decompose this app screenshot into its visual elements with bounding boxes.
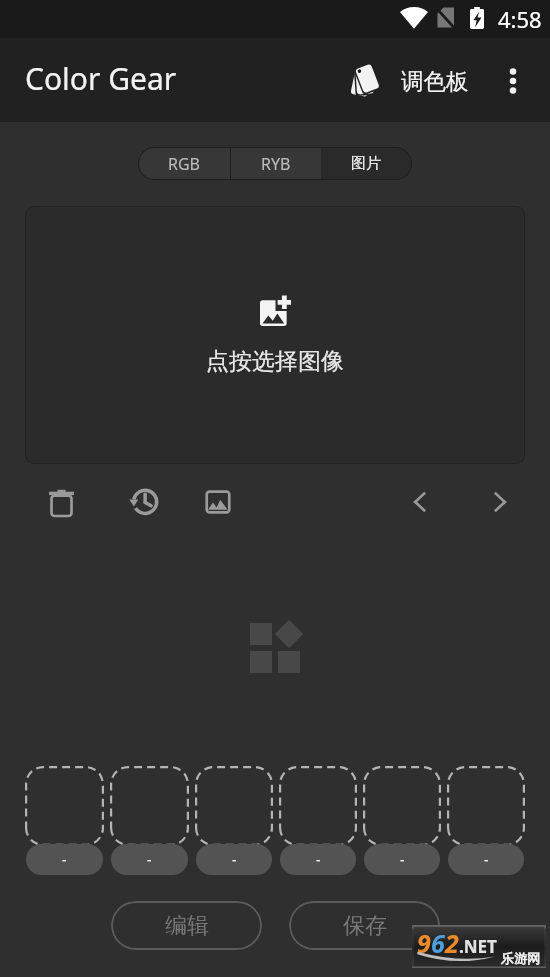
staticText: 编辑: [165, 912, 209, 940]
staticText: -: [232, 850, 237, 869]
staticText: 保存: [343, 912, 387, 940]
staticText: -: [147, 850, 152, 869]
staticText: 图片: [351, 154, 381, 173]
staticText: Color Gear: [25, 58, 177, 99]
button[interactable]: RGB: [139, 148, 230, 179]
button[interactable]: Image: [196, 480, 240, 524]
button[interactable]: -: [110, 766, 189, 875]
staticText: 2: [445, 926, 459, 960]
button[interactable]: -: [279, 766, 357, 875]
staticText: -: [62, 850, 67, 869]
button[interactable]: -: [363, 766, 441, 875]
button[interactable]: Previous: [398, 480, 442, 524]
button[interactable]: 保存: [289, 901, 440, 950]
staticText: -: [400, 850, 405, 869]
staticText: 调色板: [401, 67, 469, 95]
staticText: 乐游网: [501, 950, 540, 966]
staticText: RYB: [261, 153, 291, 175]
button[interactable]: Next: [478, 480, 522, 524]
staticText: 6: [431, 926, 445, 960]
button[interactable]: Delete: [39, 480, 83, 524]
staticText: 9: [417, 926, 431, 960]
button[interactable]: 图片: [321, 148, 411, 179]
staticText: 点按选择图像: [206, 347, 344, 376]
staticText: .NET: [459, 935, 497, 958]
staticText: 4:58: [498, 4, 542, 34]
button[interactable]: 编辑: [111, 901, 262, 950]
button[interactable]: History: [120, 480, 164, 524]
button[interactable]: RYB: [231, 148, 321, 179]
staticText: RGB: [168, 153, 201, 175]
button[interactable]: -: [25, 766, 104, 875]
button[interactable]: -: [195, 766, 273, 875]
button[interactable]: 调色板: [349, 52, 475, 109]
staticText: -: [484, 850, 489, 869]
button[interactable]: 点按选择图像: [26, 207, 524, 463]
button[interactable]: More options: [489, 57, 537, 105]
button[interactable]: -: [447, 766, 525, 875]
staticText: -: [316, 850, 321, 869]
